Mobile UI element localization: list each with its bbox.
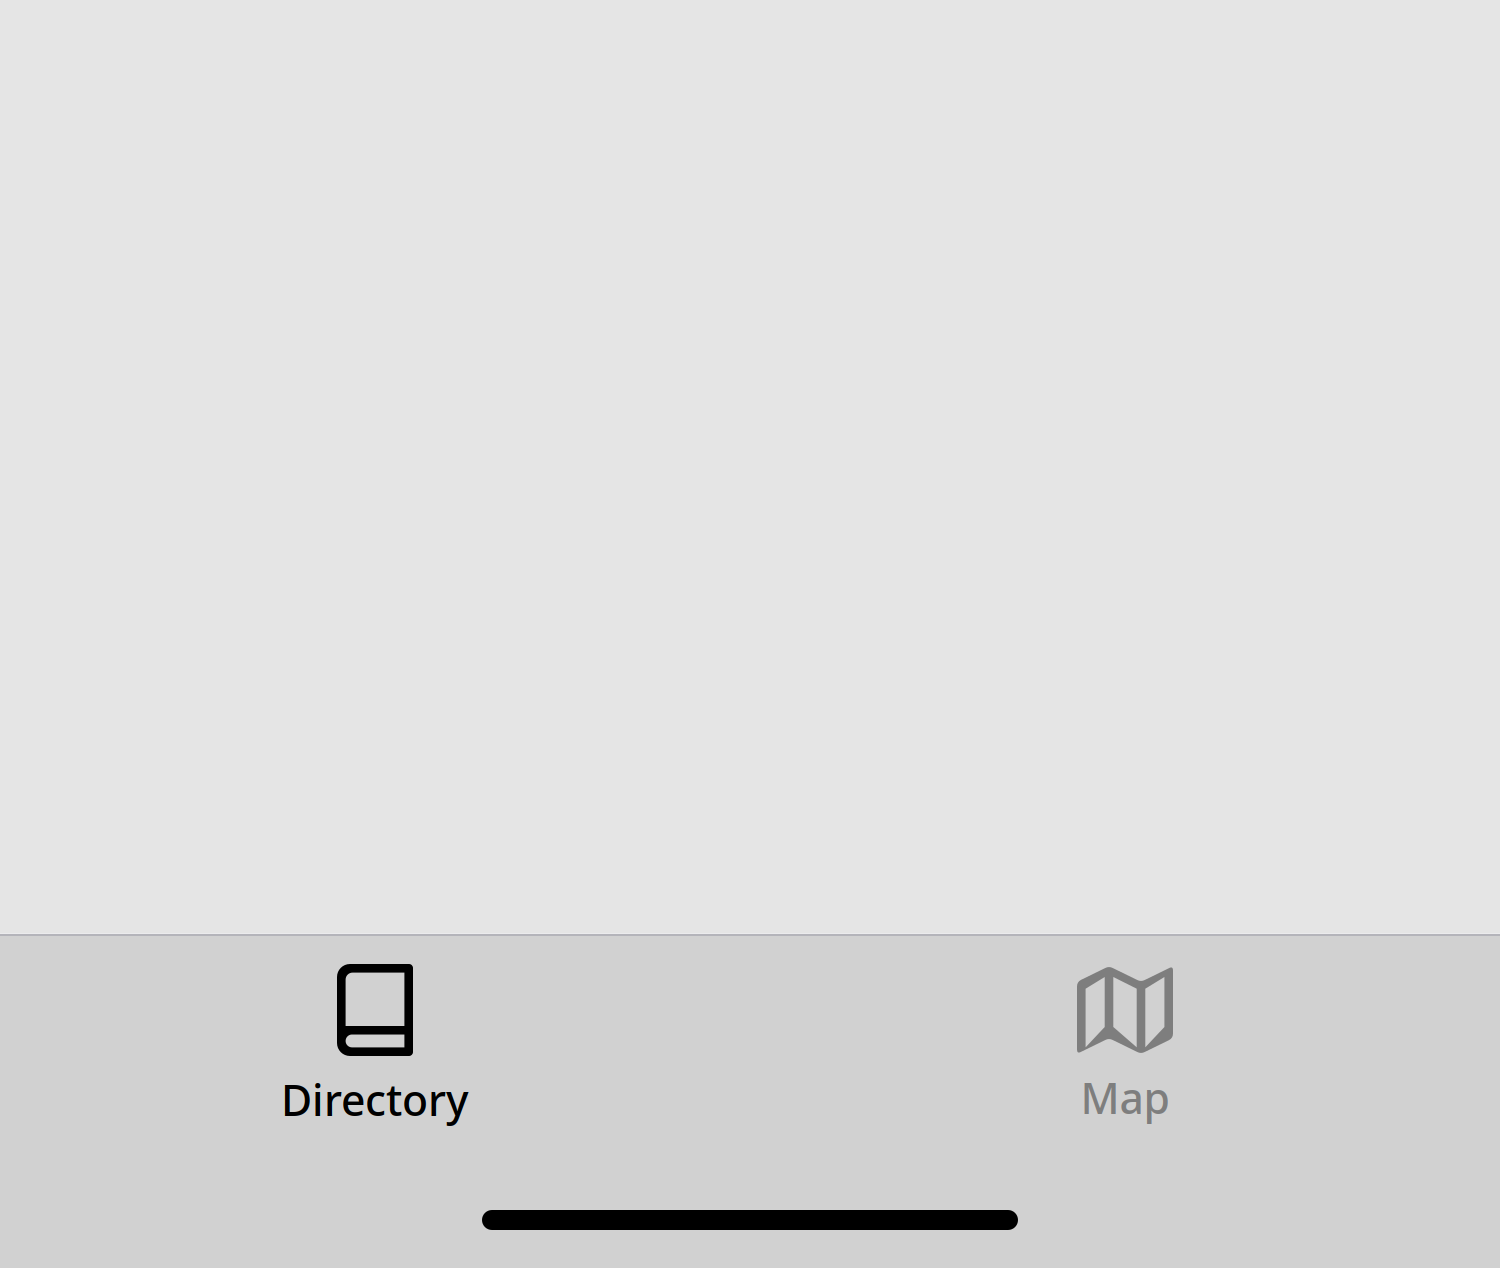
staticText: Directory bbox=[281, 1071, 469, 1128]
staticText: Map bbox=[1080, 1069, 1169, 1126]
button[interactable]: Directory bbox=[0, 936, 750, 1140]
button[interactable]: Map bbox=[750, 938, 1500, 1138]
